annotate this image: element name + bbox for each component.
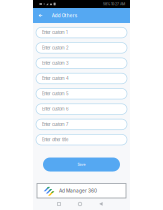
staticText: Enter other title <box>42 137 68 142</box>
button[interactable]: Back <box>90 198 111 210</box>
button[interactable]: Recents <box>48 198 69 210</box>
button[interactable]: Enter custom 5 <box>36 88 127 99</box>
button[interactable]: Ad Manager 360 <box>37 183 126 198</box>
button[interactable]: Enter custom 6 <box>36 104 127 114</box>
button[interactable]: Enter custom 7 <box>36 119 127 130</box>
button[interactable]: Enter other title <box>36 134 127 145</box>
staticText: Enter custom 3 <box>42 61 69 66</box>
button[interactable]: Save <box>43 157 120 171</box>
staticText: Enter custom 7 <box>42 122 68 127</box>
staticText: Add Others <box>52 13 77 18</box>
button[interactable]: Back <box>34 8 47 23</box>
button[interactable]: Enter custom 1 <box>36 27 127 38</box>
button[interactable]: Enter custom 4 <box>36 73 127 84</box>
button[interactable]: Enter custom 3 <box>36 58 127 68</box>
staticText: Enter custom 4 <box>42 76 69 81</box>
button[interactable]: Home <box>69 198 90 210</box>
button[interactable]: Enter custom 2 <box>36 43 127 53</box>
staticText: Ad Manager 360 <box>59 188 97 194</box>
staticText: Enter custom 5 <box>42 91 69 96</box>
staticText: 58% 10:27 AM <box>103 2 125 6</box>
staticText: Save <box>77 162 85 167</box>
staticText: Enter custom 2 <box>42 45 69 50</box>
staticText: Enter custom 6 <box>42 107 69 112</box>
staticText: Enter custom 1 <box>42 30 68 35</box>
